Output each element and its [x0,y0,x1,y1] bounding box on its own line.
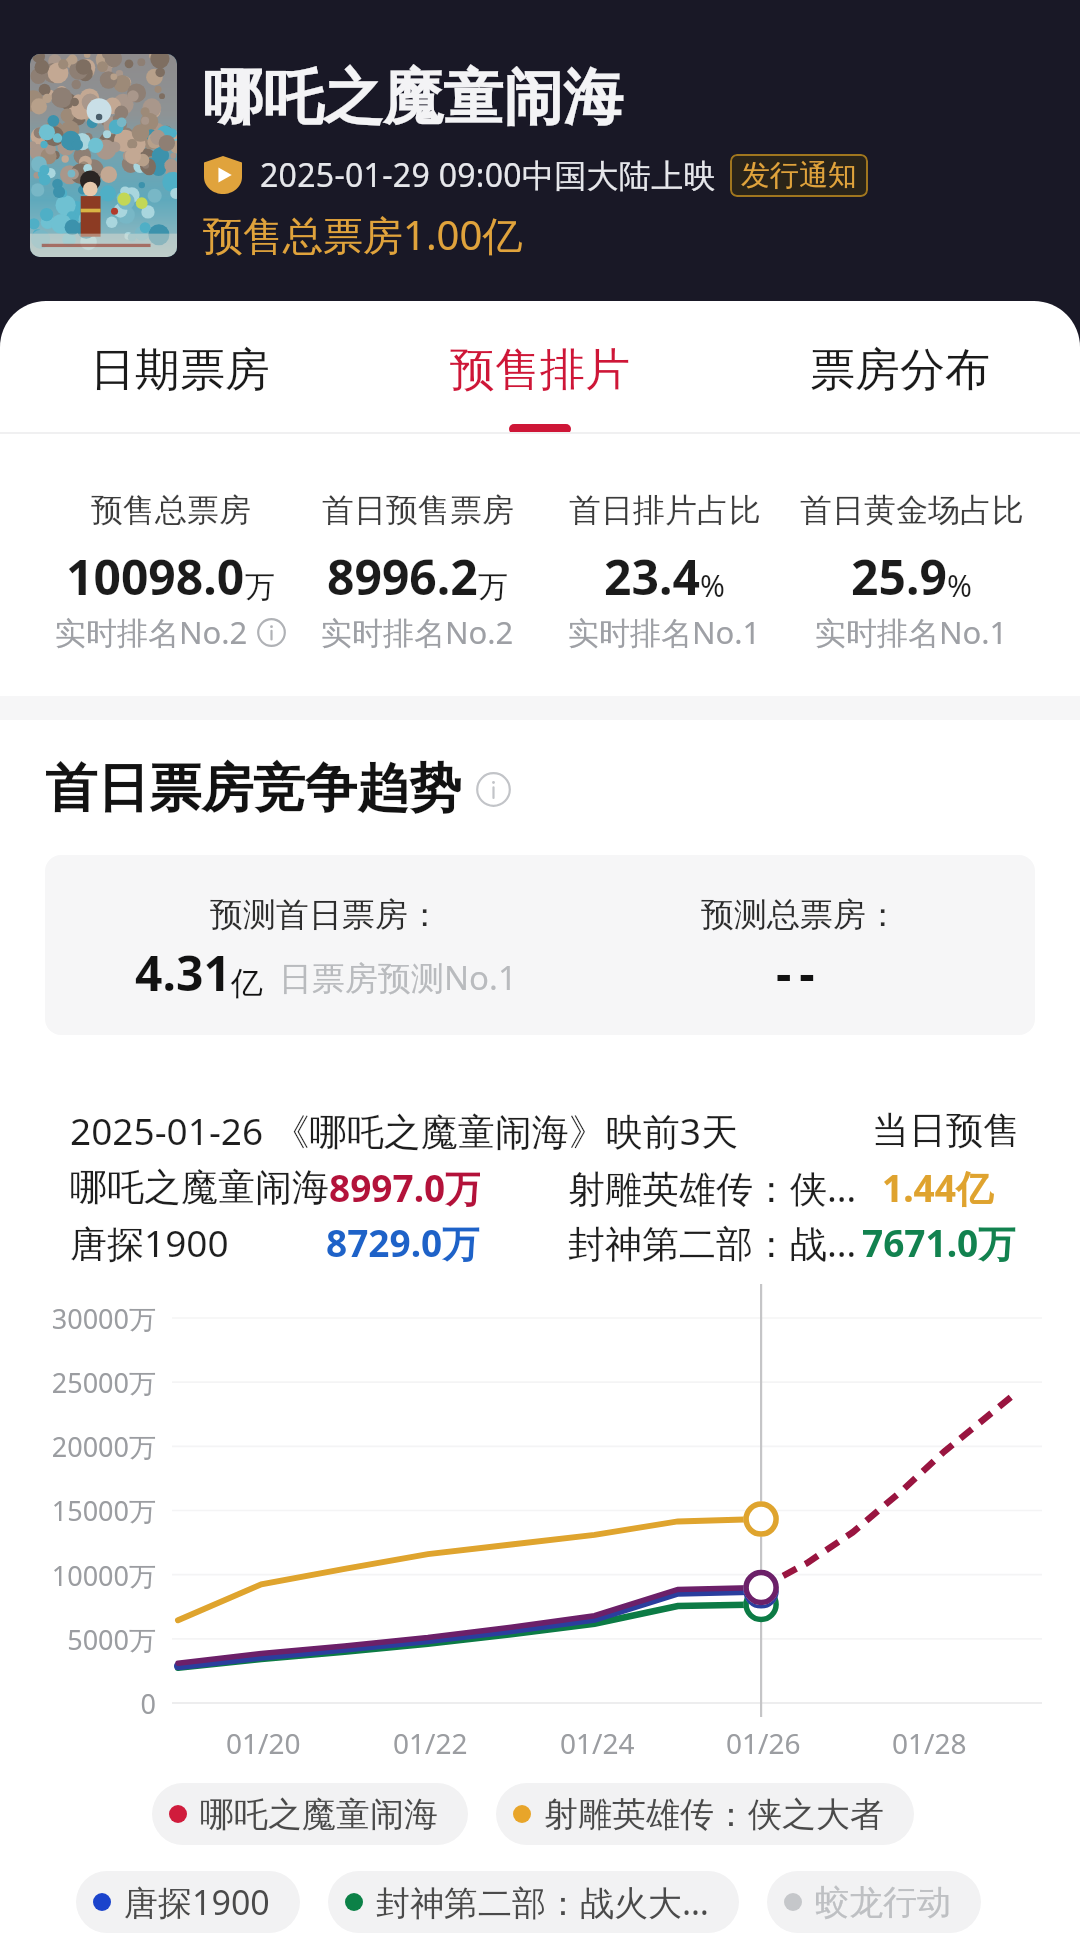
staticText: 01/24 [560,1724,635,1762]
staticText: 2025-01-26 《哪吒之魔童闹海》映前3天 [70,1105,738,1156]
button[interactable]: 2025-01-26 《哪吒之魔童闹海》映前3天 [40,1085,1040,1285]
button[interactable]: 首日排片占比 [541,434,788,653]
staticText: 发行通知 [741,157,857,194]
staticText: 哪吒之魔童闹海 [70,1164,329,1211]
button[interactable]: 唐探1900 [76,1871,300,1933]
staticText: 封神第二部：战火大… [376,1879,709,1925]
staticText: 首日预售票房 [322,490,514,530]
staticText: 25000万 [0,1364,156,1401]
staticText: 25.9 [851,544,947,609]
staticText: 唐探1900 [70,1217,229,1268]
staticText: 万 [478,568,508,606]
staticText: 4.31 [135,940,231,1005]
staticText: 封神第二部：战… [568,1217,857,1268]
staticText: 实时排名No.2 [321,611,514,653]
staticText: 2025-01-29 09:00中国大陆上映 [260,153,716,197]
staticText: 票房分布 [810,342,990,399]
staticText: -- [776,940,823,1005]
staticText: 23.4 [604,544,700,609]
button[interactable]: 预售总票房 [47,434,294,653]
staticText: 10000万 [0,1557,156,1594]
staticText: 预售总票房 [91,490,251,530]
button[interactable]: 票房分布 [720,301,1080,434]
button[interactable]: 封神第二部：战火大… [328,1871,739,1933]
staticText: 蛟龙行动 [815,1881,951,1924]
staticText: 1.44亿 [882,1162,993,1213]
staticText: 8997.0万 [329,1162,480,1213]
staticText: 预测首日票房： [210,894,441,936]
staticText: 8729.0万 [326,1217,480,1268]
staticText: % [700,565,725,606]
button[interactable]: 射雕英雄传：侠之大者 [496,1783,914,1845]
staticText: 7671.0万 [862,1217,1016,1268]
button[interactable]: 首日预售票房 [294,434,541,653]
staticText: 预售总票房1.00亿 [203,207,523,262]
staticText: 实时排名No.2 [55,611,248,653]
staticText: 万 [245,568,275,606]
button[interactable]: 蛟龙行动 [767,1871,981,1933]
other: More info [476,772,511,807]
staticText: 30000万 [0,1300,156,1337]
staticText: 01/26 [726,1724,801,1762]
staticText: 实时排名No.1 [568,611,761,653]
staticText: 首日票房竞争趋势 [45,756,461,822]
other: Play trailer [204,156,242,194]
staticText: 唐探1900 [124,1879,270,1925]
staticText: 日票房预测No.1 [279,955,517,1000]
staticText: 20000万 [0,1428,156,1465]
staticText: 射雕英雄传：侠之大者 [544,1793,884,1836]
staticText: 15000万 [0,1492,156,1529]
staticText: 预售排片 [450,342,630,399]
staticText: 01/22 [393,1724,468,1762]
button[interactable]: 哪吒之魔童闹海 [152,1783,468,1845]
staticText: 亿 [231,963,263,1003]
staticText: % [947,565,972,606]
staticText: 0 [0,1685,156,1722]
button[interactable]: 首日黄金场占比 [788,434,1035,653]
staticText: 10098.0 [66,544,245,609]
staticText: 当日预售 [872,1107,1020,1154]
staticText: 预测总票房： [701,894,899,936]
staticText: 01/28 [892,1724,967,1762]
staticText: 哪吒之魔童闹海 [203,60,623,136]
staticText: 8996.2 [327,544,478,609]
staticText: 哪吒之魔童闹海 [200,1793,438,1836]
staticText: 首日排片占比 [569,490,761,530]
button[interactable]: 发行通知 [730,154,868,197]
other: More info [257,618,286,647]
staticText: 日期票房 [90,342,270,399]
staticText: 5000万 [0,1621,156,1658]
staticText: 射雕英雄传：侠… [568,1162,857,1213]
button[interactable]: 日期票房 [0,301,360,434]
staticText: 01/20 [226,1724,301,1762]
button[interactable] [30,54,177,257]
staticText: 首日黄金场占比 [800,490,1024,530]
button[interactable]: 预售排片 [360,301,720,434]
staticText: 实时排名No.1 [815,611,1008,653]
